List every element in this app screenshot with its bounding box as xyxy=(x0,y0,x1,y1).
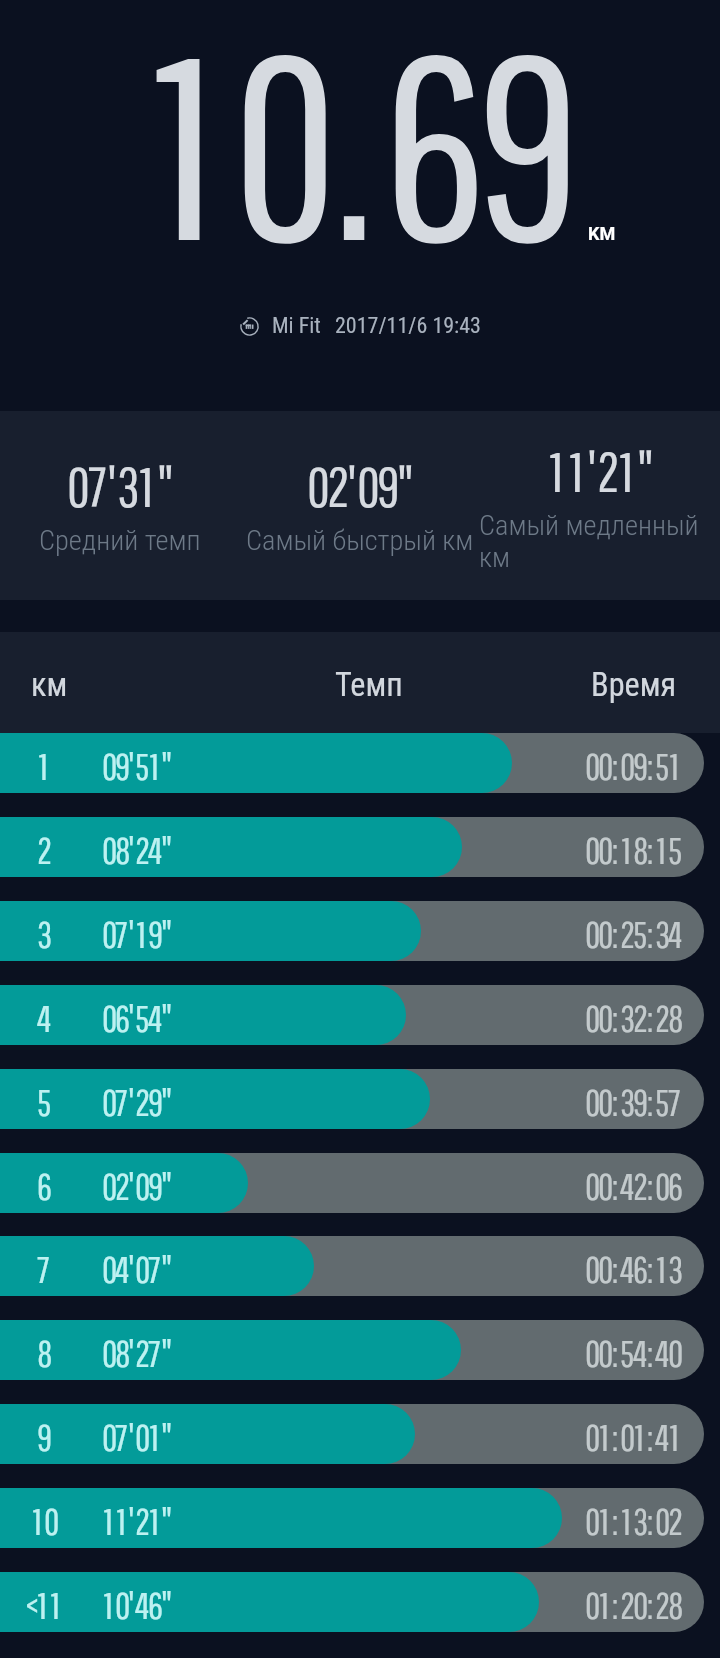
staticText: 5 xyxy=(135,996,148,1039)
button[interactable]: 7 xyxy=(0,1236,720,1296)
staticText: 1 xyxy=(137,912,146,955)
staticText: 6 xyxy=(148,1583,161,1626)
staticText: 5 xyxy=(655,1080,668,1123)
staticText: 3 xyxy=(668,1247,681,1290)
staticText: 1 xyxy=(657,1247,666,1290)
staticText: 5 xyxy=(633,912,646,955)
staticText: 4 xyxy=(655,1331,668,1374)
staticText: ' xyxy=(128,1164,135,1207)
staticText: Самый быстрый км xyxy=(246,524,474,557)
staticText: 2017/11/6 19:43 xyxy=(335,313,481,339)
staticText: : xyxy=(612,996,619,1039)
staticText: 2 xyxy=(668,1499,681,1542)
staticText: 9 xyxy=(148,912,161,955)
staticText: 2 xyxy=(135,1331,148,1374)
staticText: Mi Fit xyxy=(272,313,321,339)
staticText: 0 xyxy=(102,1331,115,1374)
staticText: " xyxy=(161,912,171,955)
staticText: " xyxy=(161,1499,171,1542)
button[interactable]: 3 xyxy=(0,901,720,961)
button[interactable]: 0 xyxy=(240,411,480,600)
staticText: 1 xyxy=(670,1415,679,1458)
staticText: 4 xyxy=(655,1415,668,1458)
staticText: : xyxy=(647,828,654,871)
staticText: " xyxy=(637,439,653,503)
staticText: 0 xyxy=(585,1415,598,1458)
staticText: 0 xyxy=(585,912,598,955)
staticText: 7 xyxy=(148,1331,161,1374)
staticText: 9 xyxy=(148,1164,161,1207)
staticText: 1 xyxy=(150,744,159,787)
staticText: 4 xyxy=(668,912,681,955)
button[interactable]: 0 xyxy=(0,411,240,600)
staticText: 7 xyxy=(668,1080,681,1123)
staticText: : xyxy=(647,1583,654,1626)
staticText: : xyxy=(647,1499,654,1542)
staticText: 2 xyxy=(620,912,633,955)
staticText: 4 xyxy=(148,828,161,871)
staticText: 0 xyxy=(598,1164,611,1207)
staticText: 1 xyxy=(622,1499,631,1542)
staticText: 4 xyxy=(37,996,50,1039)
staticText: 0 xyxy=(585,744,598,787)
staticText: 2 xyxy=(37,828,50,871)
staticText: 9 xyxy=(377,454,397,518)
staticText: : xyxy=(647,912,654,955)
staticText: 4 xyxy=(115,1247,128,1290)
staticText: ' xyxy=(587,439,597,503)
staticText: 3 xyxy=(620,1080,633,1123)
button[interactable]: < xyxy=(0,1572,720,1632)
staticText: 0 xyxy=(102,912,115,955)
staticText: 0 xyxy=(102,744,115,787)
staticText: 9 xyxy=(37,1415,50,1458)
staticText: ' xyxy=(128,828,135,871)
button[interactable]: 1 xyxy=(0,733,720,793)
staticText: 3 xyxy=(117,454,137,518)
staticText: 3 xyxy=(655,912,668,955)
staticText: " xyxy=(161,744,171,787)
staticText: 1 xyxy=(620,439,634,503)
staticText: 2 xyxy=(135,1080,148,1123)
staticText: 8 xyxy=(37,1331,50,1374)
staticText: : xyxy=(612,1247,619,1290)
staticText: 0 xyxy=(598,828,611,871)
staticText: Время xyxy=(591,666,677,704)
staticText: : xyxy=(612,1583,619,1626)
staticText: 7 xyxy=(88,454,107,518)
staticText: 4 xyxy=(135,1583,148,1626)
staticText: 7 xyxy=(37,1247,50,1290)
staticText: 0 xyxy=(102,1080,115,1123)
button[interactable]: 4 xyxy=(0,985,720,1045)
staticText: 5 xyxy=(37,1080,50,1123)
button[interactable]: 5 xyxy=(0,1069,720,1129)
staticText: : xyxy=(612,828,619,871)
staticText: : xyxy=(612,912,619,955)
staticText: км xyxy=(31,666,68,704)
staticText: ' xyxy=(128,1583,135,1626)
staticText: " xyxy=(157,454,173,518)
staticText: 1 xyxy=(600,1415,609,1458)
staticText: : xyxy=(647,1331,654,1374)
button[interactable]: 2 xyxy=(0,817,720,877)
staticText: 1 xyxy=(150,1499,159,1542)
staticText: : xyxy=(647,1080,654,1123)
button[interactable]: 1 xyxy=(0,1488,720,1548)
staticText: Темп xyxy=(335,666,403,704)
button[interactable]: 1 xyxy=(480,411,720,600)
staticText: 5 xyxy=(135,744,148,787)
staticText: 1 xyxy=(150,1415,159,1458)
staticText: 0 xyxy=(655,1164,668,1207)
staticText: : xyxy=(647,996,654,1039)
button[interactable]: 8 xyxy=(0,1320,720,1380)
button[interactable]: 6 xyxy=(0,1153,720,1213)
staticText: 5 xyxy=(655,744,668,787)
staticText: 2 xyxy=(620,1583,633,1626)
staticText: : xyxy=(612,1080,619,1123)
staticText: ' xyxy=(347,454,357,518)
staticText: 0 xyxy=(598,1080,611,1123)
button[interactable]: 9 xyxy=(0,1404,720,1464)
staticText: 0 xyxy=(102,828,115,871)
staticText: 8 xyxy=(668,1583,681,1626)
staticText: 1 xyxy=(155,0,216,291)
staticText: 1 xyxy=(51,1583,60,1626)
